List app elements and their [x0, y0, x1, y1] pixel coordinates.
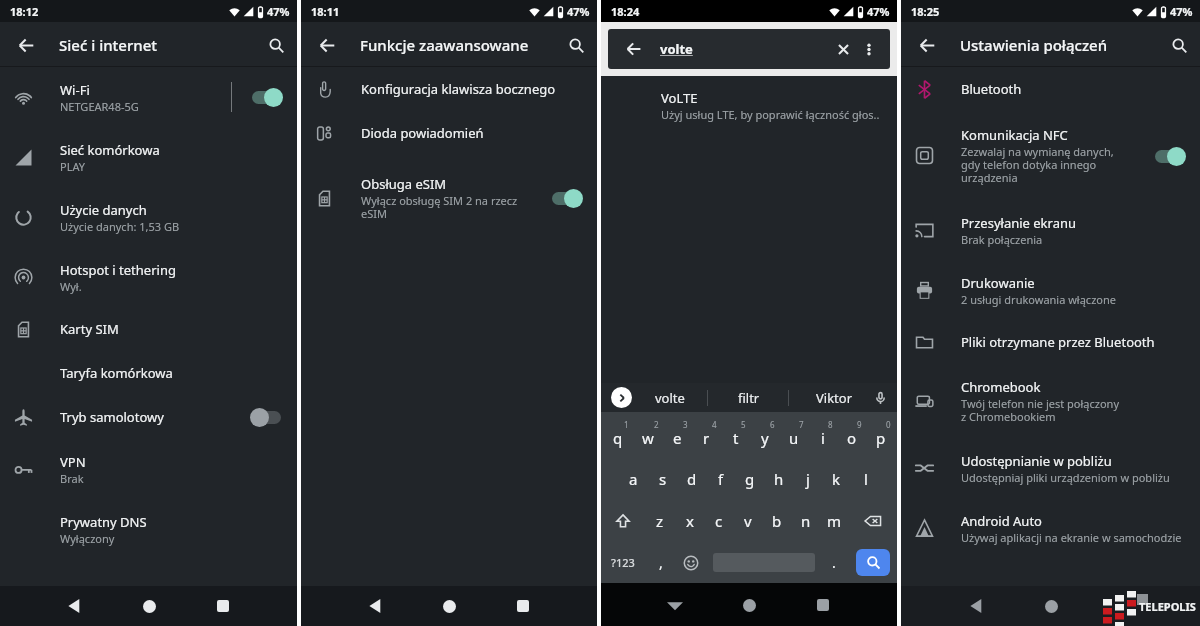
button[interactable]: k	[822, 458, 851, 500]
staticText: 9	[857, 419, 862, 430]
button[interactable]	[737, 593, 761, 617]
button[interactable]: Przesyłanie ekranu	[901, 200, 1200, 260]
button[interactable]	[1167, 33, 1191, 57]
button[interactable]: x	[675, 500, 704, 541]
button[interactable]: Drukowanie	[901, 260, 1200, 320]
staticText: Viktor	[816, 389, 853, 407]
staticText: 4	[712, 419, 717, 430]
staticText: r	[703, 428, 710, 448]
button[interactable]	[964, 594, 988, 618]
button[interactable]: o	[837, 412, 866, 458]
button[interactable]: Tryb samolotowy	[0, 395, 297, 439]
button[interactable]: q	[603, 412, 633, 458]
button[interactable]: Hotspot i tethering	[0, 247, 297, 307]
button[interactable]	[550, 188, 583, 208]
button[interactable]: Android Auto	[901, 498, 1200, 558]
button[interactable]: a	[618, 458, 648, 500]
button[interactable]	[1153, 146, 1186, 166]
button[interactable]	[363, 594, 387, 618]
button[interactable]	[849, 500, 897, 541]
button[interactable]: VoLTE	[601, 76, 897, 383]
button[interactable]	[14, 33, 38, 57]
button[interactable]: Dioda powiadomień	[301, 111, 597, 155]
button[interactable]	[811, 593, 835, 617]
button[interactable]	[250, 87, 283, 107]
button[interactable]	[250, 407, 283, 427]
staticText: PLAY	[60, 159, 86, 174]
button[interactable]: i	[808, 412, 837, 458]
button[interactable]: p	[866, 412, 895, 458]
button[interactable]	[511, 594, 535, 618]
button[interactable]: Komunikacja NFC	[901, 111, 1200, 200]
button[interactable]: f	[706, 458, 735, 500]
button[interactable]: Konfiguracja klawisza bocznego	[301, 67, 597, 111]
button[interactable]: Karty SIM	[0, 307, 297, 351]
button[interactable]	[1039, 594, 1063, 618]
button[interactable]	[832, 38, 854, 60]
staticText: Chromebook	[961, 378, 1041, 396]
button[interactable]: Sieć komórkowa	[0, 127, 297, 187]
staticText: Dioda powiadomień	[361, 124, 484, 142]
button[interactable]: Udostępnianie w pobliżu	[901, 438, 1200, 498]
staticText: 47%	[867, 4, 890, 19]
button[interactable]: b	[762, 500, 791, 541]
button[interactable]: r	[692, 412, 721, 458]
button[interactable]: z	[645, 500, 675, 541]
staticText: Obsługa eSIM	[361, 175, 447, 193]
button[interactable]: v	[733, 500, 762, 541]
button[interactable]	[315, 33, 339, 57]
staticText: Użyj usług LTE, by poprawić łączność gło…	[661, 107, 880, 122]
button[interactable]: Obsługa eSIM	[301, 160, 597, 236]
staticText: o	[847, 428, 857, 448]
button[interactable]: c	[704, 500, 733, 541]
button[interactable]	[915, 33, 939, 57]
staticText: s	[659, 469, 667, 489]
button[interactable]: d	[677, 458, 706, 500]
button[interactable]	[264, 33, 288, 57]
button[interactable]: w	[633, 412, 663, 458]
button[interactable]: e	[663, 412, 692, 458]
button[interactable]	[859, 39, 879, 59]
staticText: v	[744, 511, 752, 531]
button[interactable]	[871, 389, 889, 407]
button[interactable]	[62, 594, 86, 618]
button[interactable]: Pliki otrzymane przez Bluetooth	[901, 320, 1200, 364]
staticText: .	[832, 553, 836, 572]
button[interactable]	[564, 33, 588, 57]
button[interactable]	[663, 593, 687, 617]
button[interactable]: VPN	[0, 439, 297, 499]
button[interactable]: Chromebook	[901, 364, 1200, 438]
button[interactable]	[622, 37, 646, 61]
button[interactable]	[611, 387, 632, 408]
staticText: Brak	[60, 471, 84, 486]
button[interactable]	[137, 594, 161, 618]
button[interactable]: m	[820, 500, 849, 541]
button[interactable]: j	[793, 458, 822, 500]
button[interactable]: s	[648, 458, 677, 500]
button[interactable]: g	[735, 458, 764, 500]
button[interactable]: Prywatny DNS	[0, 499, 297, 559]
button[interactable]	[601, 500, 645, 541]
button[interactable]: h	[764, 458, 793, 500]
button[interactable]	[856, 549, 890, 576]
button[interactable]: u	[779, 412, 808, 458]
button[interactable]: Taryfa komórkowa	[0, 351, 297, 395]
button[interactable]: y	[750, 412, 779, 458]
staticText: volte	[660, 40, 693, 58]
staticText: g	[745, 469, 755, 489]
button[interactable]: l	[851, 458, 880, 500]
button[interactable]: Bluetooth	[901, 67, 1200, 111]
button[interactable]	[437, 594, 461, 618]
staticText: NETGEAR48-5G	[60, 99, 139, 114]
staticText: Taryfa komórkowa	[60, 364, 173, 382]
staticText: n	[801, 511, 811, 531]
button[interactable]: Użycie danych	[0, 187, 297, 247]
button[interactable]: n	[791, 500, 820, 541]
button[interactable]	[211, 594, 235, 618]
button[interactable]: t	[721, 412, 750, 458]
staticText: 18:24	[611, 4, 640, 19]
button[interactable]: TELEPOLIS	[1103, 591, 1196, 621]
staticText: 18:25	[911, 4, 940, 19]
button[interactable]: Wi-Fi	[0, 67, 297, 127]
